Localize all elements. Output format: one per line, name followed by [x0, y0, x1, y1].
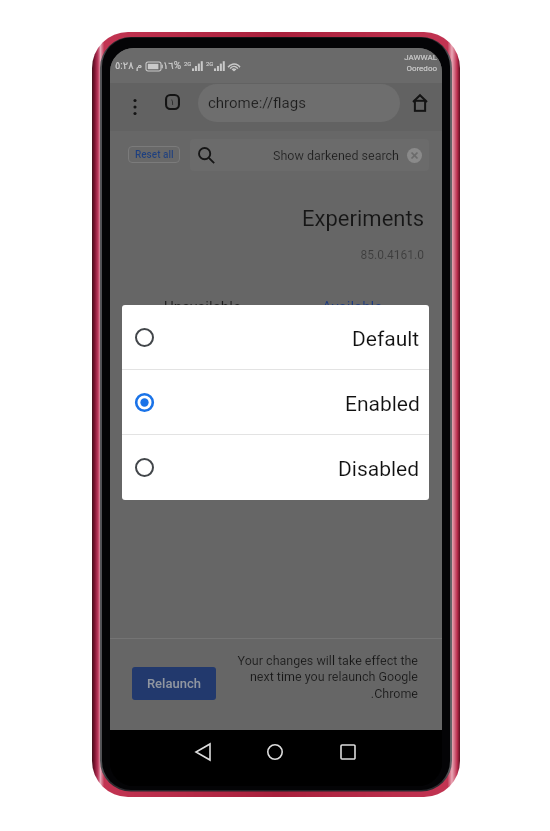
staticText: Unavailable	[164, 298, 241, 316]
staticText: Enabled	[345, 392, 420, 417]
staticText: 2G	[206, 60, 214, 67]
staticText: م ٥:٢٨	[115, 60, 143, 72]
button[interactable]: Back	[183, 732, 223, 772]
button[interactable]: Disabled	[122, 435, 429, 499]
button[interactable]: Search	[190, 139, 429, 171]
button[interactable]: Default	[122, 305, 429, 369]
staticText: Experiments	[110, 206, 424, 232]
button[interactable]: Home	[255, 732, 295, 772]
other: Search	[196, 145, 216, 165]
staticText: ١	[170, 97, 175, 107]
staticText: 85.0.4161.0	[110, 248, 424, 262]
button[interactable]: Open tabs	[165, 94, 180, 110]
button[interactable]: Enabled	[122, 370, 429, 434]
staticText: 2G	[184, 60, 192, 67]
staticText: Default	[352, 327, 420, 352]
staticText: ١٦%	[163, 60, 182, 72]
staticText: chrome://flags	[208, 94, 306, 112]
button[interactable]: Clear search	[404, 145, 424, 165]
button[interactable]: Reset all	[128, 146, 180, 163]
button[interactable]: More options	[121, 87, 149, 127]
staticText: Available	[322, 298, 383, 316]
staticText: Reset all	[135, 149, 174, 161]
button[interactable]: Relaunch	[132, 667, 216, 700]
staticText: Your changes will take effect the next t…	[227, 653, 418, 702]
staticText: Show darkened search	[190, 148, 399, 163]
staticText: Relaunch	[147, 676, 201, 691]
button[interactable]: Home	[402, 84, 438, 121]
button[interactable]: Recent apps	[328, 732, 368, 772]
button[interactable]: chrome://flags	[198, 84, 400, 122]
staticText: JAWWAL Ooredoo	[404, 53, 437, 73]
staticText: Disabled	[338, 457, 420, 482]
